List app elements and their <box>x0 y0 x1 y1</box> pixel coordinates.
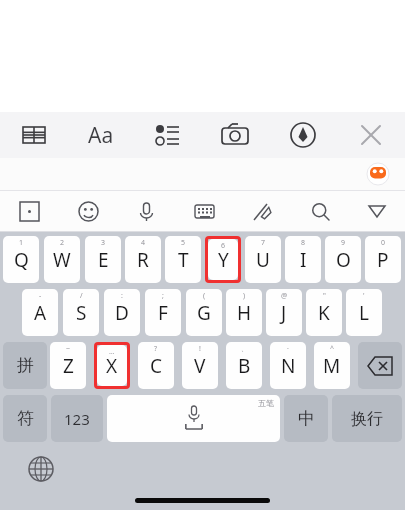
staticText: 6 <box>221 241 226 251</box>
button[interactable]: V <box>182 342 218 389</box>
button[interactable]: Camera <box>201 112 269 158</box>
staticText: 换行 <box>351 409 383 429</box>
staticText: 中 <box>298 408 315 429</box>
staticText: 3 <box>101 238 106 248</box>
button[interactable]: N <box>270 342 306 389</box>
staticText: U <box>256 247 270 273</box>
button[interactable]: U <box>245 236 281 283</box>
staticText: 7 <box>261 238 266 248</box>
button[interactable]: 符 <box>3 395 47 442</box>
button[interactable]: Hide keyboard <box>349 191 405 231</box>
staticText: P <box>377 247 389 273</box>
button[interactable]: 拼 <box>3 342 47 389</box>
staticText: 五笔 <box>258 398 274 408</box>
staticText: T <box>178 247 189 273</box>
button[interactable]: Text format <box>67 112 134 158</box>
button[interactable]: J <box>266 289 302 336</box>
button[interactable]: 换行 <box>332 395 402 442</box>
button[interactable]: Z <box>50 342 86 389</box>
button[interactable]: Emoji <box>59 191 117 231</box>
staticText: : <box>121 291 123 301</box>
staticText: A <box>34 300 47 326</box>
button[interactable]: L <box>346 289 382 336</box>
button[interactable]: R <box>125 236 161 283</box>
staticText: I <box>300 247 307 273</box>
staticText: 4 <box>141 238 146 248</box>
staticText: W <box>53 247 71 273</box>
staticText: ' <box>363 291 365 301</box>
staticText: D <box>115 300 129 326</box>
button[interactable]: I <box>285 236 321 283</box>
button[interactable]: Voice <box>117 191 175 231</box>
button[interactable]: Checklist <box>134 112 201 158</box>
button[interactable]: A <box>22 289 58 336</box>
staticText: Y <box>218 247 229 273</box>
staticText: 拼 <box>17 355 34 376</box>
staticText: Q <box>14 247 29 273</box>
button[interactable]: S <box>63 289 99 336</box>
staticText: ) <box>243 291 246 301</box>
button[interactable]: Table <box>0 112 67 158</box>
staticText: 0 <box>381 238 386 248</box>
staticText: R <box>137 247 149 273</box>
staticText: S <box>76 300 87 326</box>
button[interactable]: H <box>226 289 262 336</box>
button[interactable]: B <box>226 342 262 389</box>
staticText: ! <box>199 344 201 354</box>
button[interactable]: F <box>145 289 181 336</box>
button[interactable]: Handwriting <box>233 191 291 231</box>
staticText: N <box>281 353 296 379</box>
button[interactable]: K <box>306 289 342 336</box>
button[interactable]: C <box>138 342 174 389</box>
button[interactable]: Q <box>3 236 39 283</box>
button[interactable]: Switch language <box>26 454 56 484</box>
button[interactable]: Avatar <box>367 163 389 185</box>
staticText: J <box>281 300 287 326</box>
button[interactable]: E <box>85 236 121 283</box>
staticText: ( <box>203 291 206 301</box>
staticText: 5 <box>181 238 186 248</box>
button[interactable]: Close <box>337 112 405 158</box>
button[interactable]: Space <box>107 395 280 442</box>
staticText: ; <box>162 291 164 301</box>
staticText: G <box>197 300 211 326</box>
button[interactable]: Search <box>291 191 349 231</box>
staticText: 符 <box>17 408 34 429</box>
button[interactable]: M <box>314 342 350 389</box>
staticText: · <box>287 344 289 354</box>
staticText: ^ <box>330 344 335 354</box>
staticText: H <box>237 300 252 326</box>
staticText: 1 <box>19 238 24 248</box>
staticText: @ <box>281 291 288 301</box>
button[interactable]: X <box>97 345 127 386</box>
staticText: 、 <box>241 344 248 353</box>
staticText: O <box>336 247 351 273</box>
button[interactable]: W <box>44 236 80 283</box>
staticText: 123 <box>64 409 90 429</box>
staticText: V <box>194 353 206 379</box>
button[interactable]: D <box>104 289 140 336</box>
staticText: Z <box>63 353 74 379</box>
button[interactable]: P <box>365 236 401 283</box>
button[interactable]: T <box>165 236 201 283</box>
button[interactable]: G <box>186 289 222 336</box>
staticText: ? <box>154 344 158 354</box>
button[interactable]: O <box>325 236 361 283</box>
staticText: / <box>80 291 83 301</box>
button[interactable]: Keyboard <box>175 191 233 231</box>
staticText: Aa <box>88 121 114 150</box>
staticText: X <box>106 353 118 379</box>
button[interactable]: Backspace <box>358 342 402 389</box>
staticText: C <box>150 353 163 379</box>
button[interactable]: Sogou <box>0 191 59 231</box>
staticText: B <box>238 353 251 379</box>
staticText: L <box>359 300 369 326</box>
button[interactable]: 中 <box>284 395 328 442</box>
staticText: 8 <box>301 238 306 248</box>
button[interactable]: Draw <box>269 112 337 158</box>
button[interactable]: Y <box>208 239 238 280</box>
staticText: ~ <box>66 344 71 354</box>
button[interactable]: 123 <box>51 395 103 442</box>
staticText: E <box>98 247 109 273</box>
staticText: K <box>318 300 330 326</box>
